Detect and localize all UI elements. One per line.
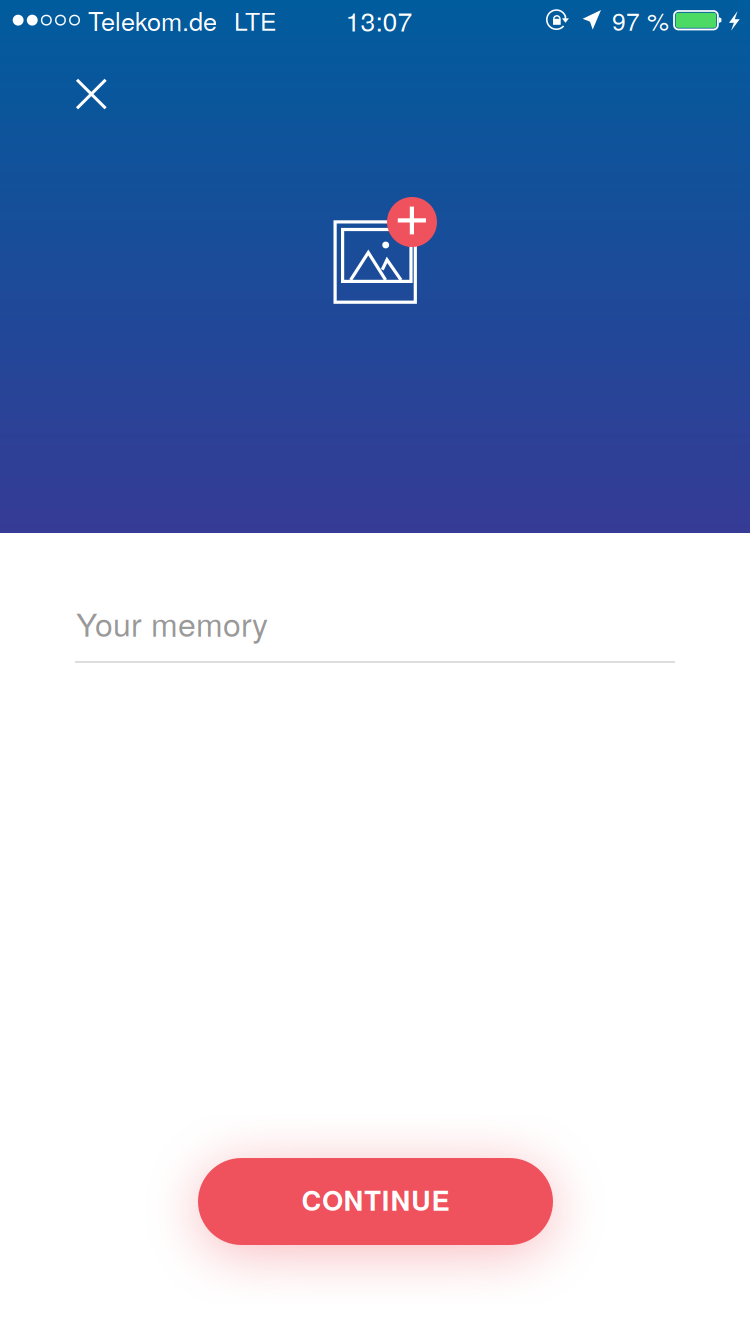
- staticText: Your memory: [76, 600, 268, 646]
- staticText: 97 %: [612, 2, 669, 38]
- button[interactable]: Your memory: [75, 602, 675, 664]
- button[interactable]: Add photo: [332, 196, 438, 304]
- staticText: 13:07: [345, 1, 412, 39]
- staticText: CONTINUE: [301, 1180, 450, 1219]
- staticText: Telekom.de: [88, 2, 217, 38]
- button[interactable]: CONTINUE: [198, 1158, 553, 1245]
- staticText: LTE: [234, 2, 276, 38]
- button[interactable]: Close: [55, 58, 128, 130]
